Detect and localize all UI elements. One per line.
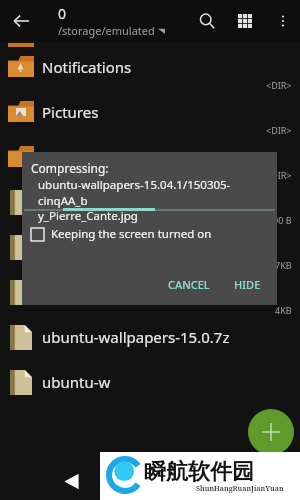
staticText: <DIR> — [266, 79, 292, 91]
staticText: ubuntu-wallpapers-15.0.7z — [42, 327, 242, 347]
button[interactable]: <DIR> — [0, 138, 300, 183]
staticText: 319.07KB — [252, 259, 292, 271]
staticText: 瞬航软件园 — [144, 458, 254, 486]
staticText: Compressing: — [31, 160, 109, 176]
button[interactable]: Keeping the screen turned on — [31, 226, 212, 242]
button[interactable]: Back — [60, 470, 82, 492]
staticText: IFFSpecs.lzh — [42, 237, 242, 257]
staticText: 0 — [58, 4, 67, 23]
staticText: <DIR> — [266, 124, 292, 136]
staticText: ubuntu-w — [42, 372, 242, 392]
button[interactable]: Pictures — [0, 93, 300, 138]
button[interactable]: More options — [270, 8, 296, 34]
staticText: Notifications — [42, 57, 132, 77]
staticText: Download.7z — [42, 192, 242, 212]
staticText: ShunHangRuanJianYuan — [196, 484, 284, 494]
staticText: libusb-1.0.21.zip — [42, 282, 242, 302]
staticText: Keeping the screen turned on — [51, 226, 212, 242]
staticText: /storage/emulated — [58, 23, 155, 38]
button[interactable]: Search — [194, 8, 220, 34]
button[interactable]: ubuntu-w — [0, 363, 300, 408]
button[interactable]: CANCEL — [160, 272, 218, 297]
staticText: CANCEL — [168, 277, 210, 292]
staticText: ubuntu-wallpapers-15.04.1/150305-cinqAA_… — [38, 177, 278, 223]
staticText: 90 B — [273, 214, 292, 226]
button[interactable]: Back — [6, 6, 36, 36]
button[interactable]: Download.7z — [0, 183, 300, 228]
button[interactable]: Add — [248, 409, 294, 455]
button[interactable]: libusb-1.0.21.zip — [0, 273, 300, 318]
button[interactable]: Notifications — [0, 48, 300, 93]
button[interactable]: IFFSpecs.lzh — [0, 228, 300, 273]
button[interactable]: HIDE — [226, 272, 269, 297]
staticText: 4KB — [275, 304, 292, 316]
button[interactable]: ubuntu-wallpapers-15.0.7z — [0, 318, 300, 363]
staticText: Pictures — [42, 102, 99, 122]
staticText: <DIR> — [266, 169, 292, 181]
button[interactable]: Grid view — [232, 8, 258, 34]
staticText: HIDE — [234, 277, 261, 292]
